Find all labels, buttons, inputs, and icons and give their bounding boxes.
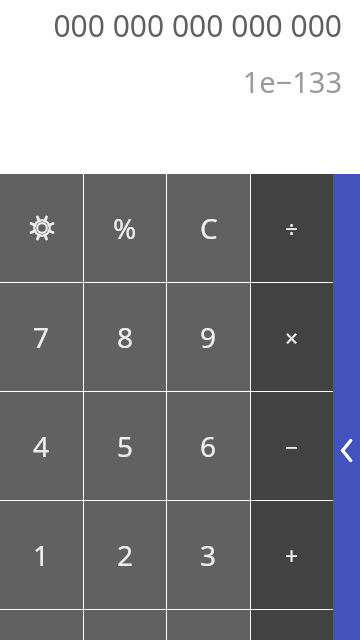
staticText: 5 xyxy=(117,427,134,465)
button[interactable]: Settings xyxy=(0,174,83,282)
button[interactable]: Open advanced panel xyxy=(333,174,360,640)
staticText: + xyxy=(285,540,299,571)
staticText: 7 xyxy=(33,318,50,356)
staticText: 000 000 000 000 000 xyxy=(53,5,342,46)
button[interactable]: % xyxy=(84,174,166,282)
staticText: ÷ xyxy=(285,213,299,244)
button[interactable]: 5 xyxy=(84,392,166,500)
staticText: 8 xyxy=(117,318,134,356)
staticText: % xyxy=(113,209,137,247)
staticText: 6 xyxy=(200,427,217,465)
button[interactable]: 7 xyxy=(0,283,83,391)
button[interactable]: 4 xyxy=(0,392,83,500)
staticText: 4 xyxy=(33,427,50,465)
staticText: C xyxy=(200,209,218,247)
button[interactable]: ÷ xyxy=(251,174,333,282)
button[interactable]: × xyxy=(251,283,333,391)
button[interactable]: C xyxy=(167,174,250,282)
button[interactable]: 3 xyxy=(167,501,250,609)
button[interactable]: 9 xyxy=(167,283,250,391)
staticText: 9 xyxy=(200,318,217,356)
button[interactable]: 8 xyxy=(84,283,166,391)
button[interactable]: 6 xyxy=(167,392,250,500)
staticText: 2 xyxy=(117,536,134,574)
staticText: 3 xyxy=(200,536,217,574)
staticText: 1 xyxy=(33,536,50,574)
button[interactable]: 2 xyxy=(84,501,166,609)
staticText: − xyxy=(285,431,299,462)
button[interactable]: 1 xyxy=(0,501,83,609)
staticText: × xyxy=(285,322,299,353)
button[interactable]: − xyxy=(251,392,333,500)
button[interactable]: + xyxy=(251,501,333,609)
staticText: 1e−133 xyxy=(242,62,342,101)
